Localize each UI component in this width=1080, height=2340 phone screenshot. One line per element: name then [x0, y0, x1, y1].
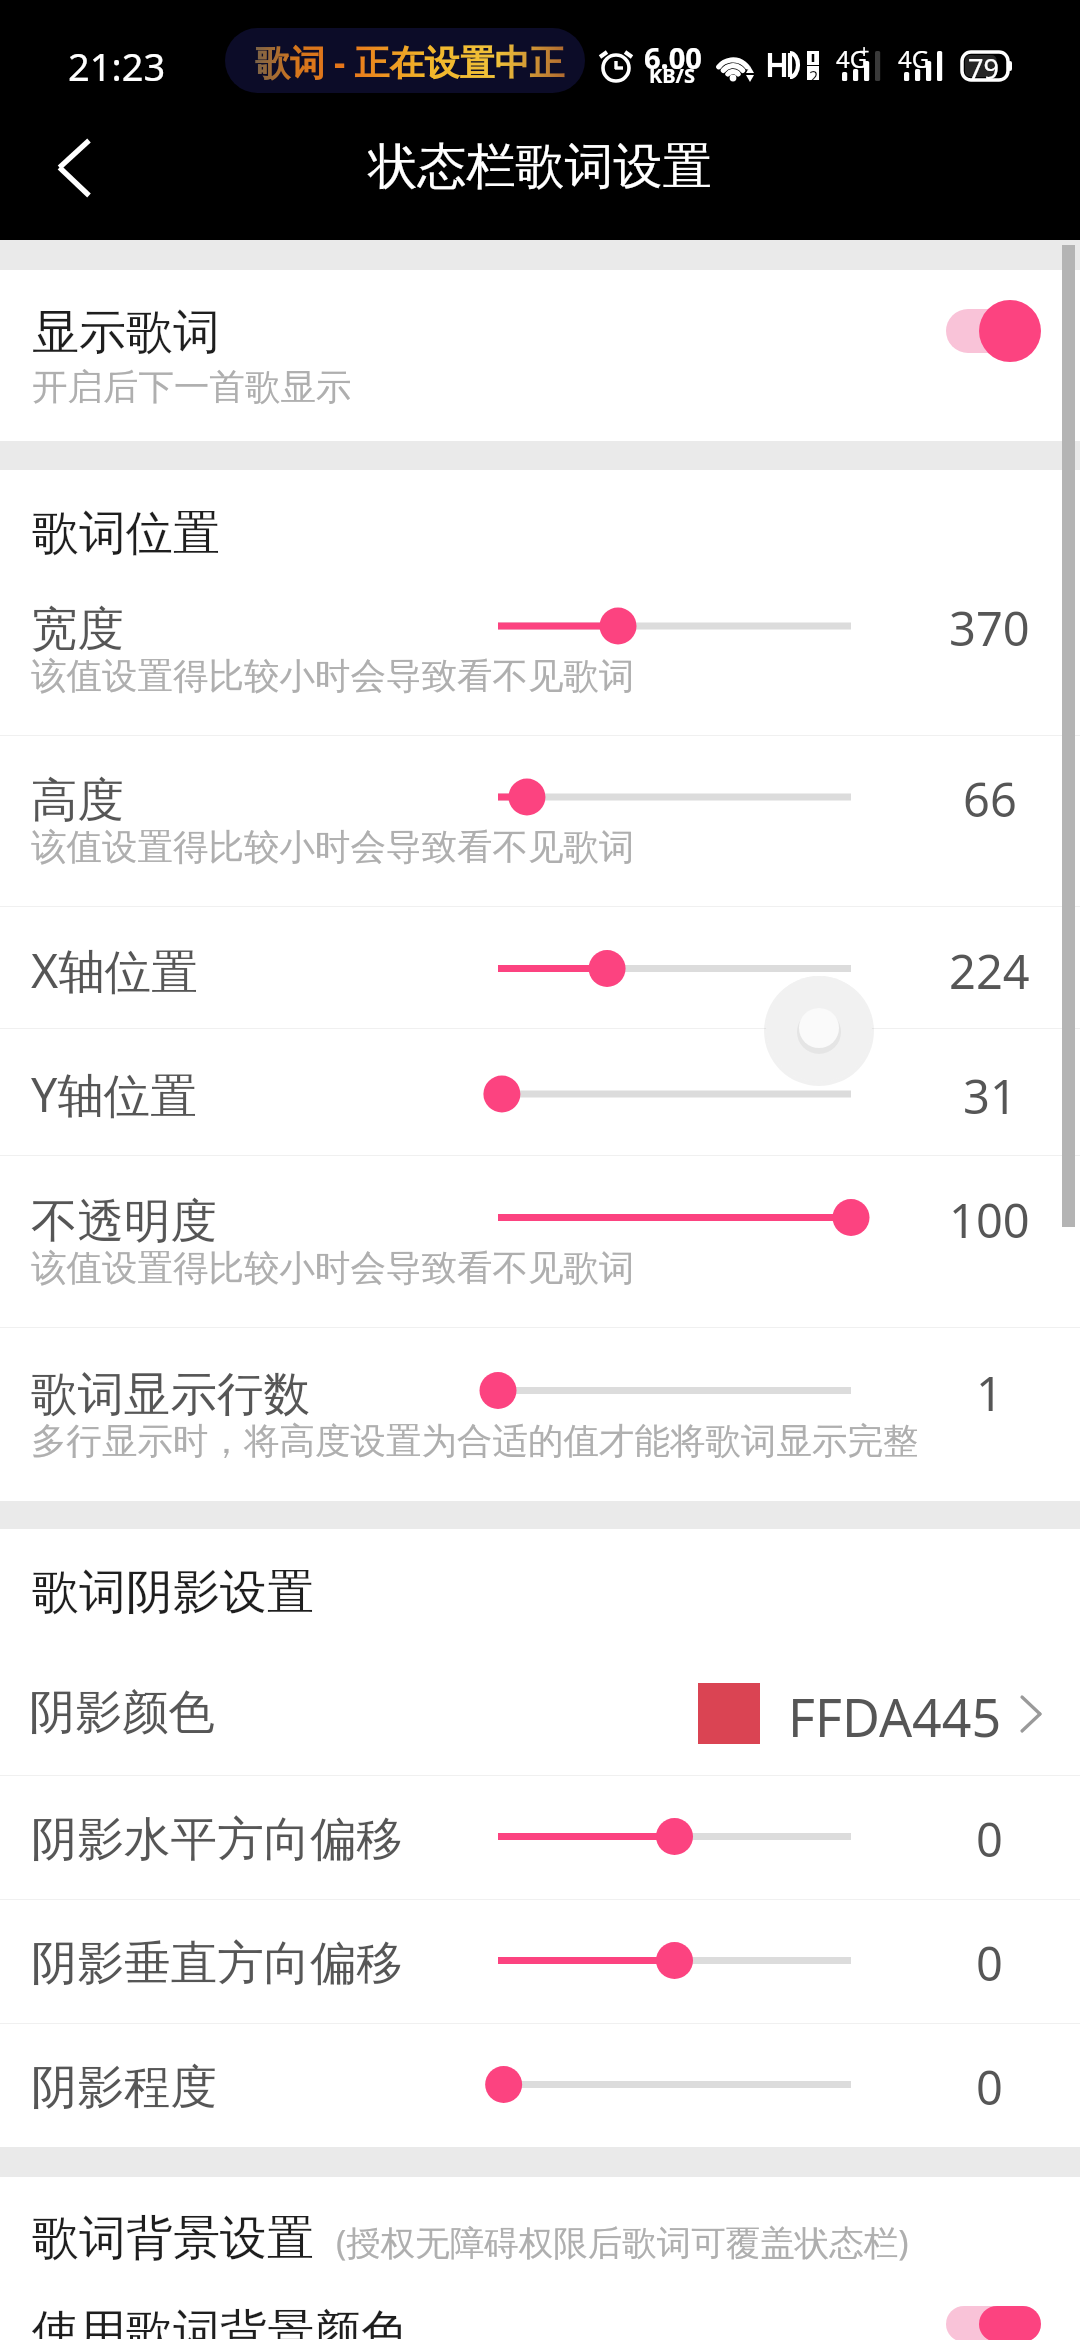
staticText: 4G [836, 42, 868, 75]
staticText: KB/S [649, 62, 695, 89]
staticText: Y轴位置 [31, 1062, 197, 1126]
button[interactable]: 阴影颜色 [0, 1651, 1080, 1775]
staticText: 阴影颜色 [29, 1683, 215, 1742]
button[interactable]: Y轴位置 [0, 1029, 1080, 1155]
staticText: 6.00 [644, 38, 702, 77]
staticText: 歌词 - 正在设置中正 [255, 38, 565, 86]
staticText: 2 [809, 66, 819, 88]
staticText: 不透明度 [31, 1192, 217, 1251]
button[interactable]: Assistive touch [754, 964, 884, 1094]
button[interactable]: 歌词显示行数 [0, 1328, 1080, 1501]
staticText: 0 [976, 1807, 1003, 1867]
staticText: 阴影程度 [31, 2058, 217, 2117]
button[interactable]: 使用歌词背景颜色 [0, 2304, 1080, 2340]
staticText: 该值设置得比较小时会导致看不见歌词 [31, 654, 635, 699]
staticText: 1 [976, 1361, 1003, 1421]
staticText: 歌词阴影设置 [32, 1563, 314, 1622]
staticText: X轴位置 [31, 938, 198, 1002]
staticText: 阴影垂直方向偏移 [31, 1934, 403, 1993]
staticText: + [859, 39, 870, 64]
button[interactable]: 阴影垂直方向偏移 [0, 1900, 1080, 2023]
staticText: 使用歌词背景颜色 [32, 2303, 408, 2339]
staticText: 开启后下一首歌显示 [32, 365, 352, 410]
staticText: 歌词显示行数 [31, 1365, 310, 1424]
button[interactable]: 显示歌词 [0, 270, 1080, 441]
staticText: (授权无障碍权限后歌词可覆盖状态栏) [336, 2218, 909, 2265]
staticText: 多行显示时，将高度设置为合适的值才能将歌词显示完整 [31, 1419, 919, 1464]
button[interactable]: 宽度 [0, 565, 1080, 735]
button[interactable]: Back [14, 112, 124, 222]
button[interactable]: 阴影水平方向偏移 [0, 1776, 1080, 1899]
staticText: 高度 [31, 771, 124, 830]
staticText: 状态栏歌词设置 [0, 136, 1080, 198]
button[interactable]: 高度 [0, 736, 1080, 906]
staticText: 宽度 [31, 600, 124, 659]
button[interactable]: 不透明度 [0, 1156, 1080, 1327]
staticText: 该值设置得比较小时会导致看不见歌词 [31, 825, 635, 870]
staticText: 显示歌词 [32, 303, 220, 362]
staticText: 79 [968, 50, 999, 87]
staticText: 21:23 [68, 40, 166, 92]
staticText: 阴影水平方向偏移 [31, 1810, 403, 1869]
staticText: 370 [949, 596, 1030, 656]
button[interactable]: 阴影程度 [0, 2024, 1080, 2147]
staticText: FFDA4453 [788, 1681, 1003, 1753]
staticText: 歌词位置 [32, 504, 220, 563]
button[interactable]: X轴位置 [0, 907, 1080, 1028]
staticText: 歌词背景设置 [32, 2209, 314, 2268]
staticText: 31 [963, 1064, 1017, 1124]
staticText: 66 [963, 767, 1017, 827]
staticText: 224 [949, 939, 1030, 999]
staticText: 该值设置得比较小时会导致看不见歌词 [31, 1246, 635, 1291]
staticText: 0 [976, 1931, 1003, 1991]
staticText: 100 [949, 1188, 1030, 1248]
staticText: 0 [976, 2055, 1003, 2115]
staticText: 4G [898, 42, 930, 75]
